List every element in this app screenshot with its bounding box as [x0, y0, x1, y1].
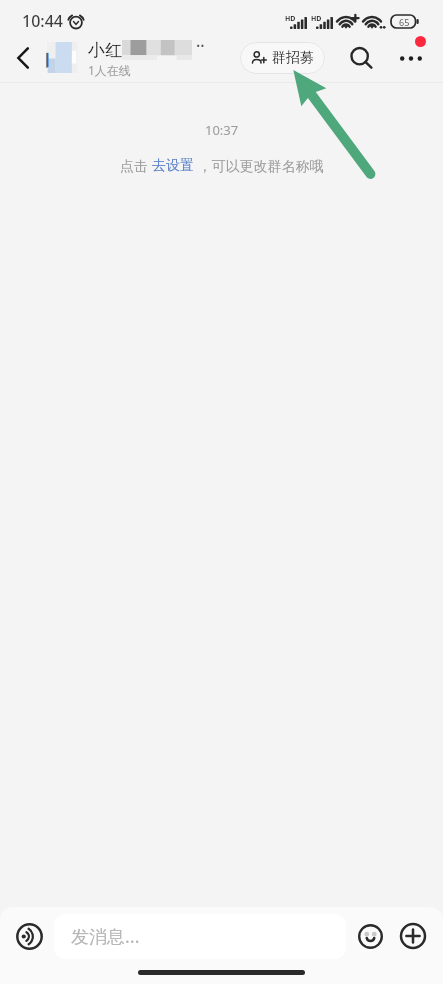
- button[interactable]: Add: [396, 919, 430, 953]
- button[interactable]: Voice message: [8, 915, 50, 957]
- button[interactable]: 发消息...: [54, 914, 346, 959]
- staticText: HD: [285, 14, 296, 24]
- button[interactable]: Emoji: [353, 919, 387, 953]
- staticText: 群招募: [272, 49, 314, 67]
- staticText: ，可以更改群名称哦: [194, 156, 324, 175]
- staticText: 发消息...: [71, 924, 140, 949]
- staticText: ··: [196, 35, 205, 57]
- button[interactable]: More options: [395, 42, 427, 74]
- button[interactable]: 去设置: [152, 157, 194, 175]
- staticText: HD: [311, 14, 322, 24]
- staticText: 10:44: [22, 10, 63, 32]
- staticText: 65: [399, 16, 410, 28]
- staticText: 1人在线: [88, 62, 131, 78]
- staticText: 10:37: [205, 121, 239, 139]
- button[interactable]: Back: [7, 42, 39, 74]
- button[interactable]: 群招募: [240, 42, 325, 74]
- staticText: 点击: [120, 156, 152, 175]
- staticText: 小红: [88, 40, 122, 61]
- button[interactable]: Search: [345, 42, 377, 74]
